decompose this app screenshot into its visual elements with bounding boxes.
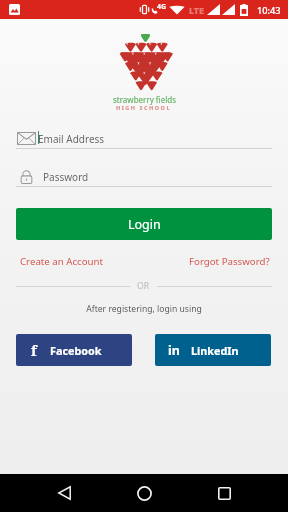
staticText: Login — [128, 216, 161, 233]
staticText: strawberry fields — [113, 94, 176, 105]
staticText: f — [31, 341, 37, 360]
staticText: Email Address — [38, 132, 105, 146]
button[interactable]: Forgot Password? — [189, 255, 270, 268]
staticText: in — [168, 342, 180, 359]
staticText: Facebook — [50, 343, 102, 358]
staticText: After registering, login using — [0, 303, 288, 315]
button[interactable]: Home — [124, 474, 164, 512]
staticText: HIGH SCHOOL — [116, 104, 172, 111]
staticText: 4G — [157, 2, 167, 12]
staticText: OR — [137, 280, 150, 292]
button[interactable]: Recents — [204, 474, 244, 512]
button[interactable]: Create an Account — [20, 255, 104, 268]
staticText: 10:43 — [257, 4, 281, 17]
button[interactable]: Login — [16, 208, 272, 240]
staticText: LinkedIn — [191, 343, 239, 358]
button[interactable]: Back — [44, 474, 84, 512]
staticText: Password — [43, 170, 89, 184]
staticText: LTE — [189, 4, 205, 16]
staticText: Create an Account — [20, 255, 104, 268]
staticText: Forgot Password? — [189, 255, 270, 268]
button[interactable]: f — [16, 334, 132, 366]
button[interactable]: in — [155, 334, 271, 366]
